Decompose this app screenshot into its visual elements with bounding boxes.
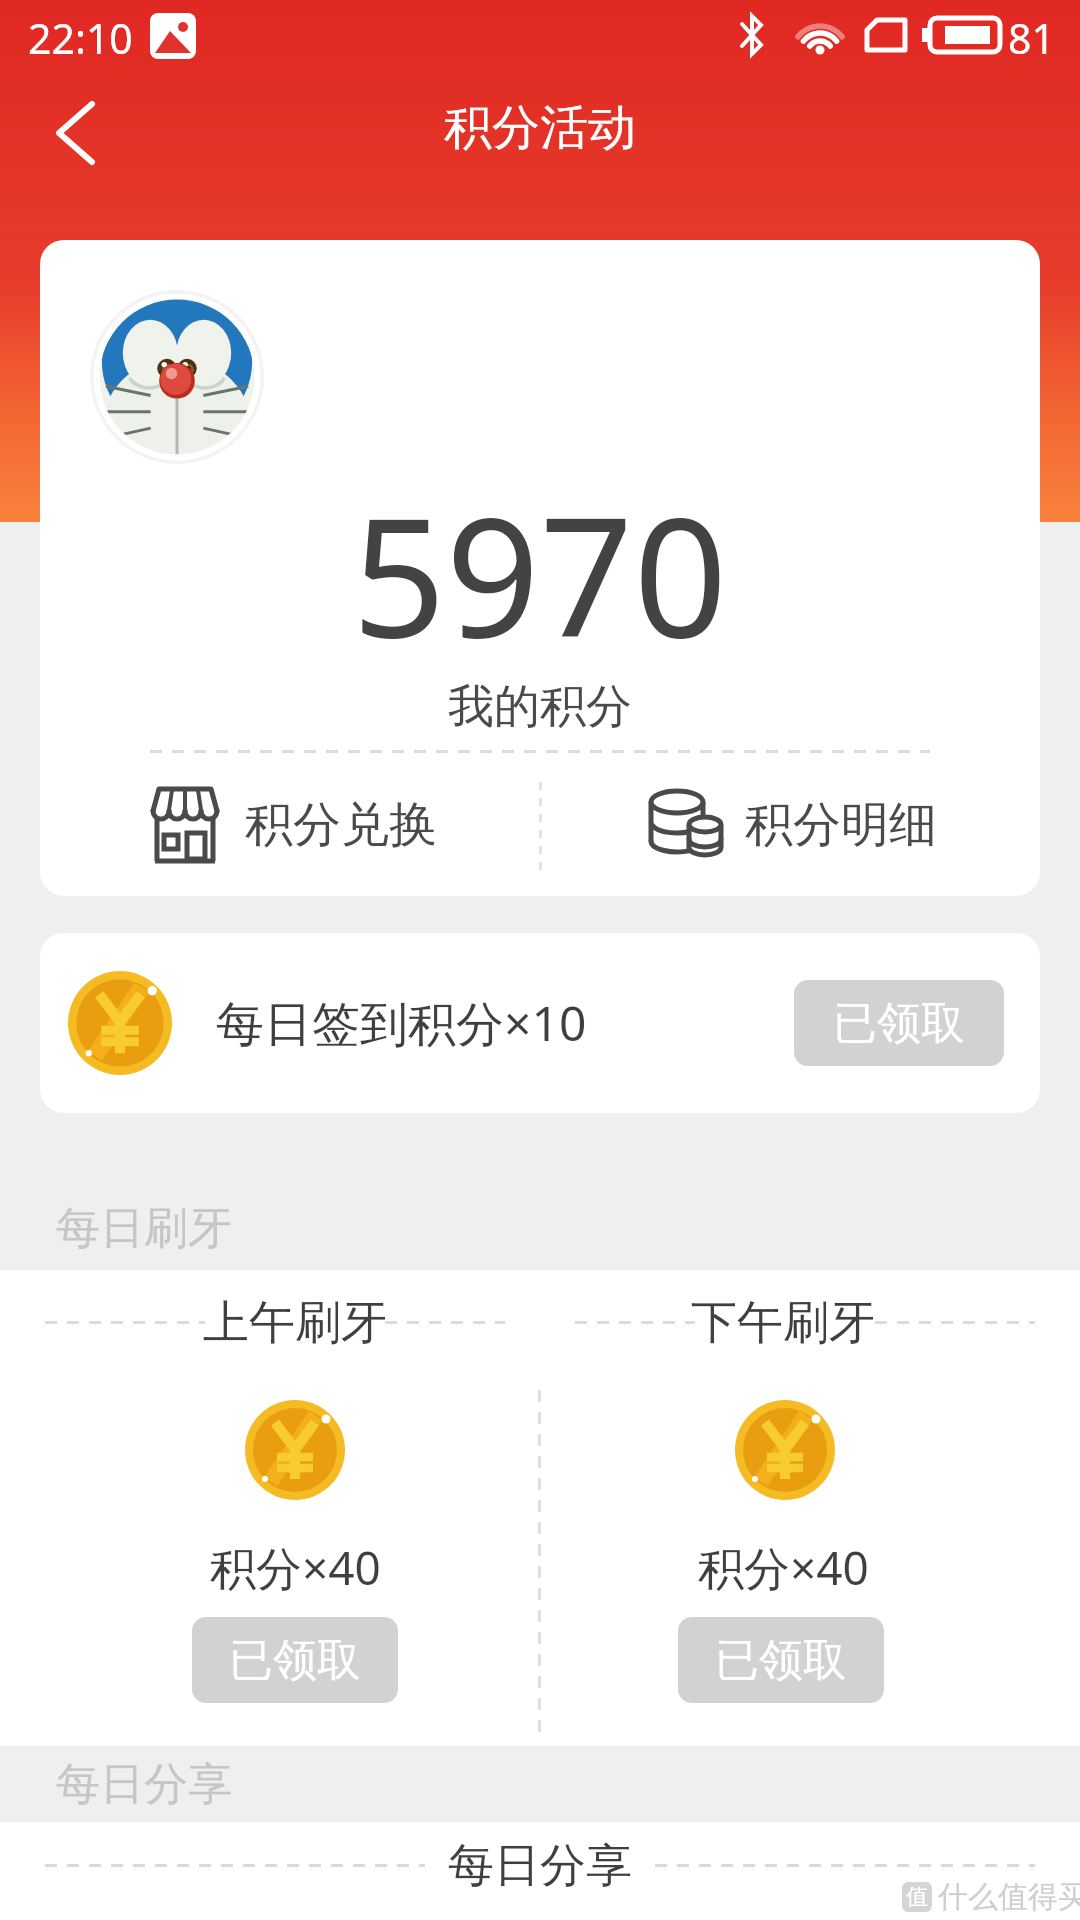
- staticText: 积分明细: [745, 795, 937, 855]
- staticText: 5970: [352, 462, 728, 662]
- staticText: 已领取: [833, 996, 965, 1051]
- staticText: 81: [1008, 10, 1055, 66]
- button[interactable]: 已领取: [192, 1617, 398, 1703]
- staticText: 每日分享: [448, 1837, 632, 1895]
- button[interactable]: 已领取: [794, 980, 1004, 1066]
- staticText: 已领取: [715, 1633, 847, 1688]
- staticText: 积分×40: [210, 1536, 381, 1596]
- staticText: 我的积分: [448, 678, 632, 734]
- staticText: 积分兑换: [245, 795, 437, 855]
- button[interactable]: 积分明细: [540, 770, 1040, 880]
- staticText: 每日分享: [56, 1757, 232, 1812]
- staticText: 积分活动: [444, 98, 636, 158]
- staticText: 值: [906, 1883, 928, 1911]
- staticText: 上午刷牙: [203, 1294, 387, 1352]
- staticText: 什么值得买: [938, 1878, 1080, 1916]
- button[interactable]: 每日签到积分×10: [40, 933, 1040, 1113]
- staticText: 22:10: [28, 10, 133, 66]
- staticText: 下午刷牙: [691, 1294, 875, 1352]
- button[interactable]: 积分兑换: [40, 770, 540, 880]
- staticText: 积分×40: [698, 1536, 869, 1596]
- staticText: 已领取: [229, 1633, 361, 1688]
- button[interactable]: [54, 102, 96, 164]
- button[interactable]: 已领取: [678, 1617, 884, 1703]
- staticText: 每日签到积分×10: [216, 990, 587, 1056]
- staticText: 每日刷牙: [56, 1201, 232, 1256]
